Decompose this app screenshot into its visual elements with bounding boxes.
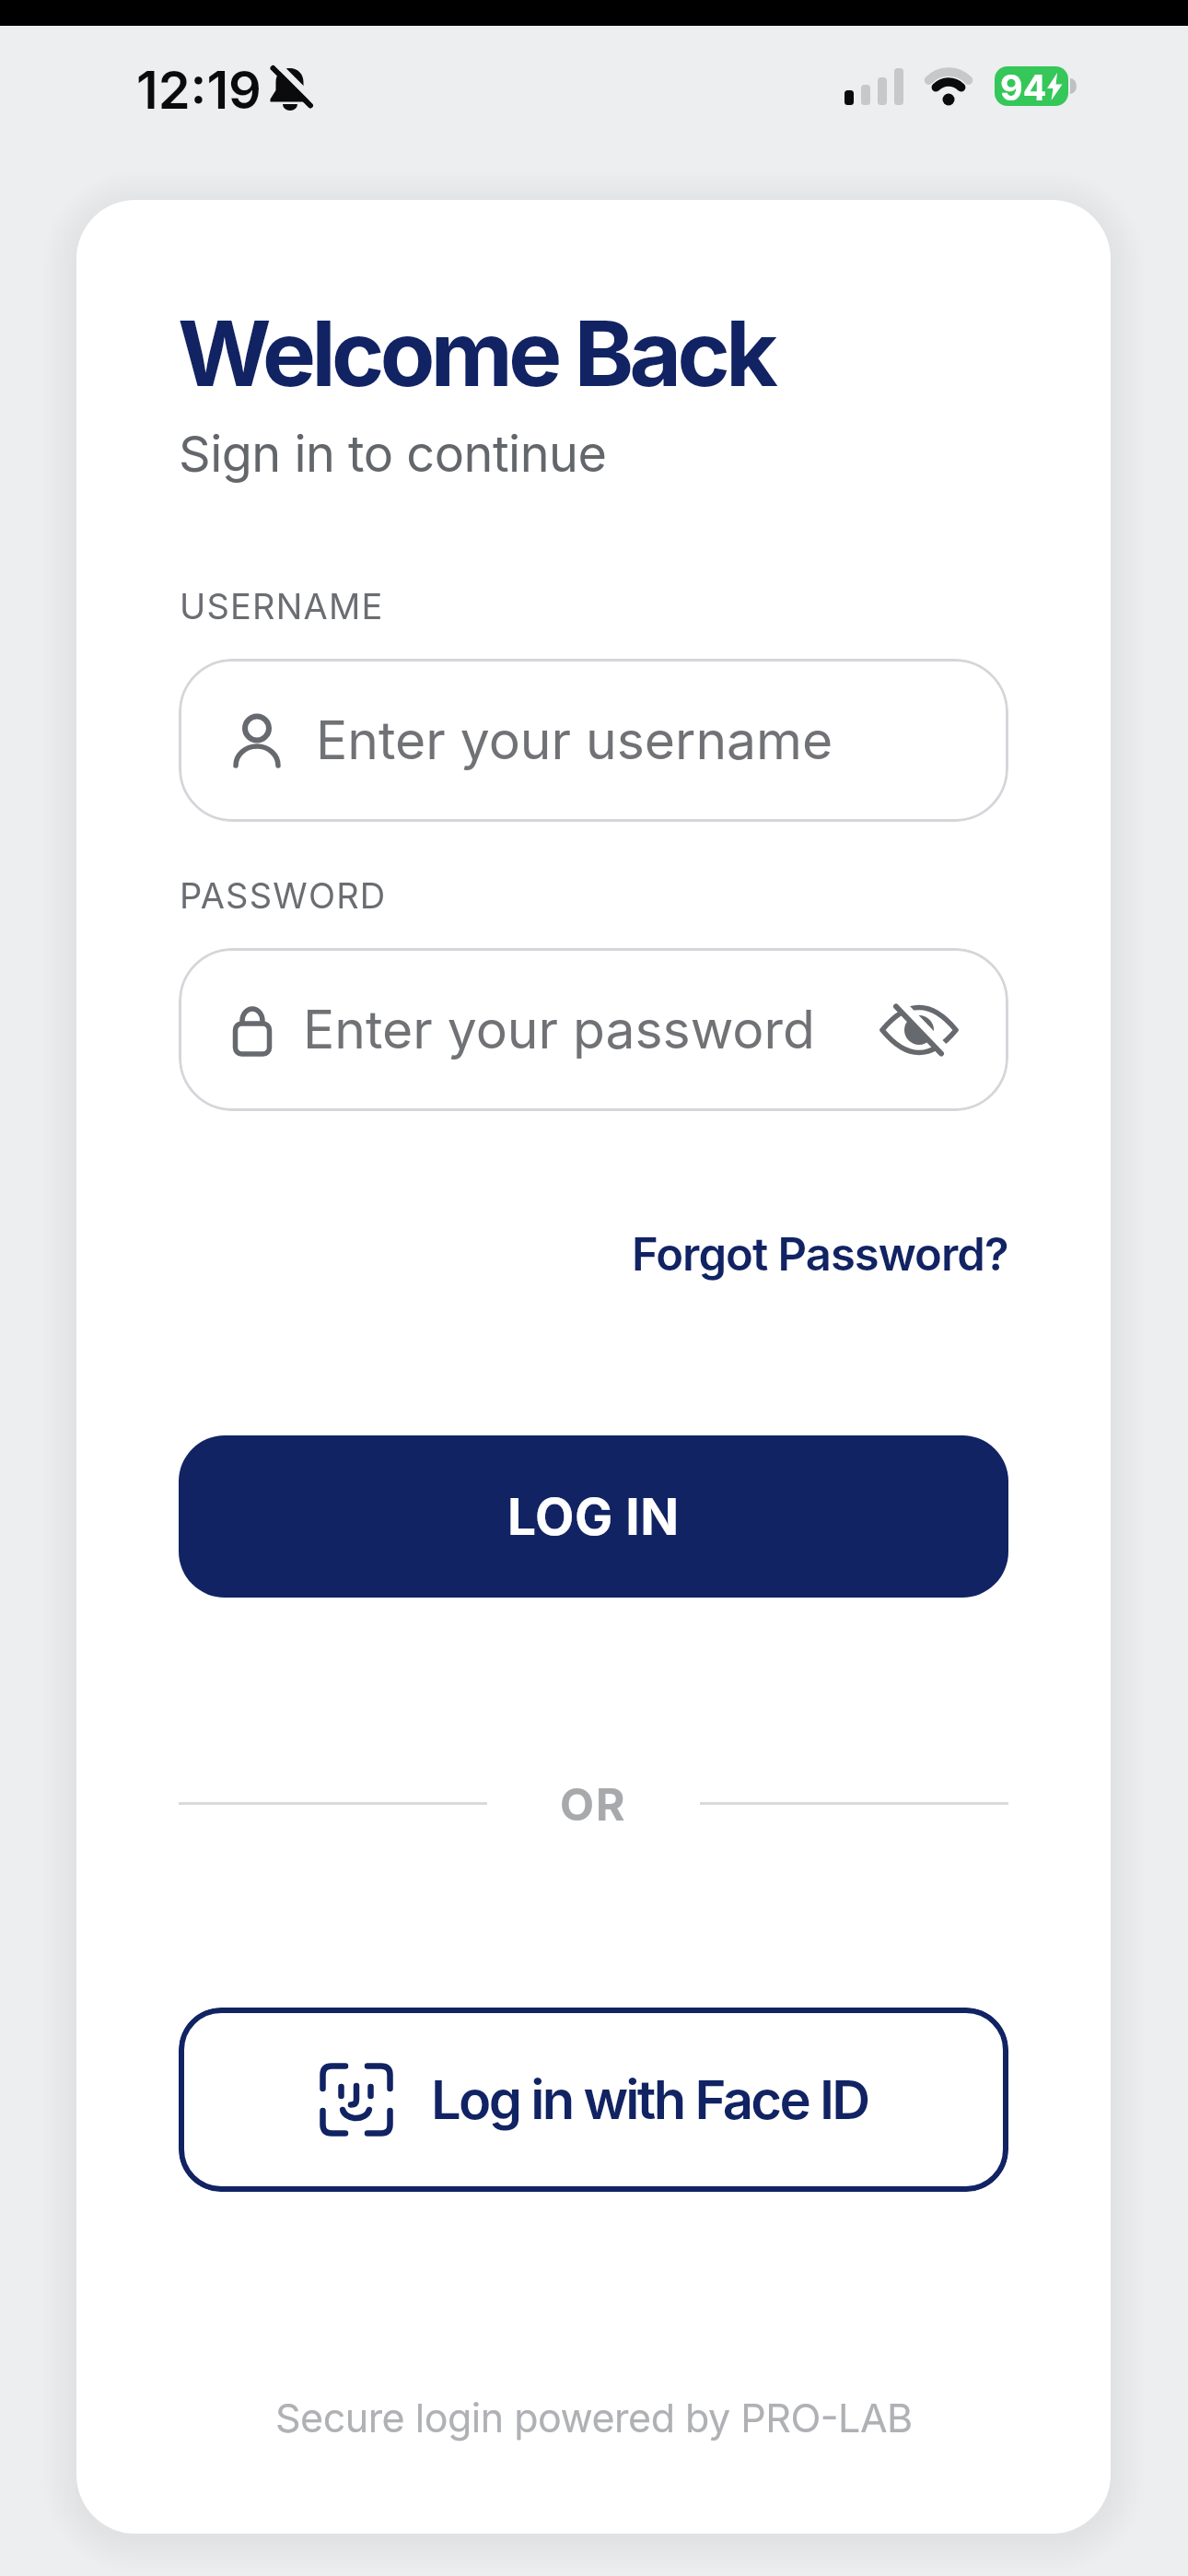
button[interactable]: Enter your username	[179, 659, 1008, 822]
button[interactable]: Forgot Password?	[632, 1227, 1008, 1282]
staticText: Welcome Back	[178, 299, 774, 408]
staticText: Sign in to continue	[179, 424, 607, 484]
staticText: Enter your password	[303, 998, 815, 1061]
staticText: Log in with Face ID	[431, 2067, 868, 2132]
staticText: 94	[1000, 66, 1047, 106]
button[interactable]: Enter your password	[179, 948, 1008, 1111]
button[interactable]	[880, 991, 958, 1069]
button[interactable]: Log in with Face ID	[179, 2008, 1008, 2192]
staticText: USERNAME	[180, 585, 384, 627]
staticText: OR	[560, 1777, 627, 1829]
button[interactable]: LOG IN	[179, 1435, 1008, 1598]
staticText: Secure login powered by PRO-LAB	[275, 2394, 913, 2441]
staticText: Enter your username	[316, 708, 833, 772]
staticText: PASSWORD	[180, 874, 387, 917]
staticText: 12:19	[136, 59, 262, 122]
staticText: LOG IN	[507, 1486, 680, 1548]
